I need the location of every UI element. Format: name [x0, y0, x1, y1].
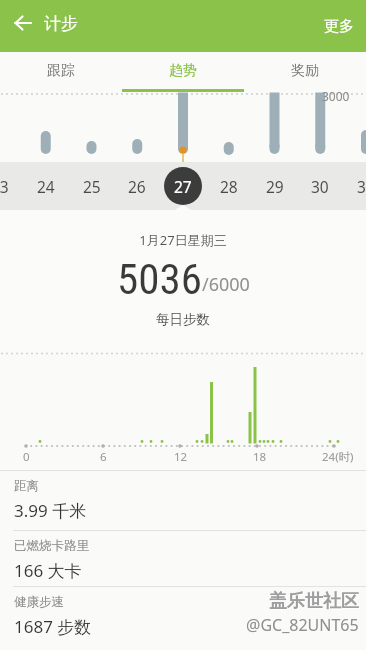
staticText: 3000 — [322, 88, 350, 102]
staticText: 31 — [357, 176, 366, 197]
staticText: 盖乐世社区 — [269, 590, 359, 612]
button[interactable]: 30 — [297, 162, 343, 210]
staticText: 12 — [174, 449, 188, 465]
button[interactable]: 已燃烧卡路里 — [0, 530, 366, 586]
staticText: 24 — [37, 176, 55, 197]
button[interactable]: 24 — [23, 162, 69, 210]
staticText: 18 — [253, 449, 267, 465]
staticText: @GC_82UNT65 — [246, 614, 359, 636]
staticText: 1687 步数 — [14, 615, 92, 638]
staticText: 6 — [100, 449, 107, 465]
button[interactable]: 31 — [343, 162, 366, 210]
staticText: 28 — [220, 176, 238, 197]
button[interactable]: 奖励 — [244, 52, 366, 90]
staticText: 25 — [83, 176, 101, 197]
staticText: 30 — [311, 176, 329, 197]
button[interactable]: 趋势 — [122, 52, 244, 90]
staticText: 距离 — [14, 478, 39, 494]
staticText: 1月27日星期三 — [139, 231, 227, 249]
staticText: 5036 — [117, 254, 202, 304]
staticText: 奖励 — [291, 62, 319, 80]
button[interactable]: 更多 — [316, 6, 362, 46]
staticText: 计步 — [44, 13, 78, 34]
staticText: 健康步速 — [14, 594, 64, 610]
button[interactable] — [4, 4, 42, 42]
staticText: 跟踪 — [47, 62, 75, 80]
button[interactable]: 跟踪 — [0, 52, 122, 90]
staticText: 27 — [174, 176, 192, 197]
button[interactable]: 26 — [114, 162, 160, 210]
staticText: 每日步数 — [156, 311, 210, 328]
button[interactable]: 23 — [0, 162, 23, 210]
staticText: 24(时) — [322, 449, 354, 465]
button[interactable]: 25 — [69, 162, 115, 210]
button[interactable]: 28 — [206, 162, 252, 210]
staticText: 29 — [266, 176, 284, 197]
button[interactable]: 27 — [164, 167, 202, 205]
button[interactable]: 距离 — [0, 470, 366, 530]
staticText: 26 — [128, 176, 146, 197]
staticText: 23 — [0, 176, 9, 197]
staticText: 趋势 — [169, 62, 197, 80]
button[interactable]: 29 — [252, 162, 298, 210]
staticText: /6000 — [202, 272, 250, 297]
staticText: 166 大卡 — [14, 559, 82, 582]
staticText: 盖乐世社区 — [270, 591, 360, 613]
staticText: 0 — [23, 449, 30, 465]
button[interactable]: 健康步速 — [0, 586, 366, 650]
staticText: 已燃烧卡路里 — [14, 538, 89, 554]
staticText: 3.99 千米 — [14, 499, 87, 522]
staticText: 更多 — [324, 17, 354, 36]
